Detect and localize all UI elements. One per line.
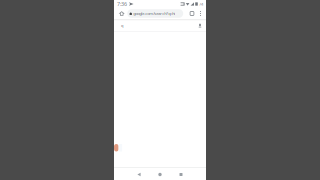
- staticText: 74: [199, 1, 203, 7]
- staticText: q: [121, 23, 123, 28]
- button[interactable]: q: [121, 19, 123, 32]
- button[interactable]: Recent apps: [170, 167, 191, 180]
- button[interactable]: Search by voice: [196, 19, 203, 32]
- button[interactable]: Tabs: [187, 8, 196, 19]
- button[interactable]: Back: [128, 167, 149, 180]
- button[interactable]: More options: [196, 8, 204, 19]
- staticText: google.com/search?q=hi: [133, 11, 175, 16]
- staticText: 7:36: [117, 0, 127, 8]
- button[interactable]: google.com/search?q=hi: [127, 9, 183, 18]
- button[interactable]: Home: [149, 167, 170, 180]
- button[interactable]: Home: [116, 8, 127, 19]
